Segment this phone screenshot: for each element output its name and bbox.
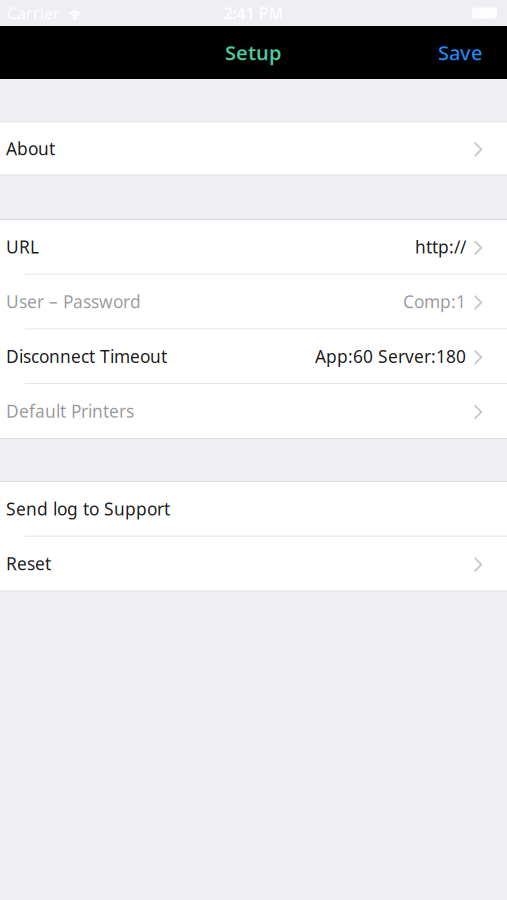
staticText: About bbox=[6, 137, 55, 160]
button[interactable]: User – Password bbox=[0, 275, 507, 329]
button[interactable]: About bbox=[0, 122, 507, 174]
staticText: Carrier bbox=[7, 2, 60, 24]
staticText: Setup bbox=[225, 39, 282, 66]
staticText: Default Printers bbox=[6, 400, 134, 423]
button[interactable]: Default Printers bbox=[0, 384, 507, 438]
button[interactable]: Send log to Support bbox=[0, 482, 507, 536]
staticText: 2:41 PM bbox=[223, 2, 283, 24]
button[interactable]: Reset bbox=[0, 537, 507, 591]
staticText: Save bbox=[438, 39, 482, 66]
staticText: Disconnect Timeout bbox=[6, 345, 167, 368]
staticText: App:60 Server:180 bbox=[315, 345, 466, 368]
staticText: User – Password bbox=[6, 290, 141, 313]
staticText: Reset bbox=[6, 552, 51, 575]
button[interactable]: URL bbox=[0, 220, 507, 274]
staticText: Send log to Support bbox=[6, 497, 170, 520]
staticText: URL bbox=[6, 235, 39, 258]
button[interactable]: Save bbox=[430, 30, 490, 75]
button[interactable]: Disconnect Timeout bbox=[0, 329, 507, 383]
staticText: http:// bbox=[415, 235, 466, 258]
staticText: Comp:1 bbox=[403, 290, 466, 313]
